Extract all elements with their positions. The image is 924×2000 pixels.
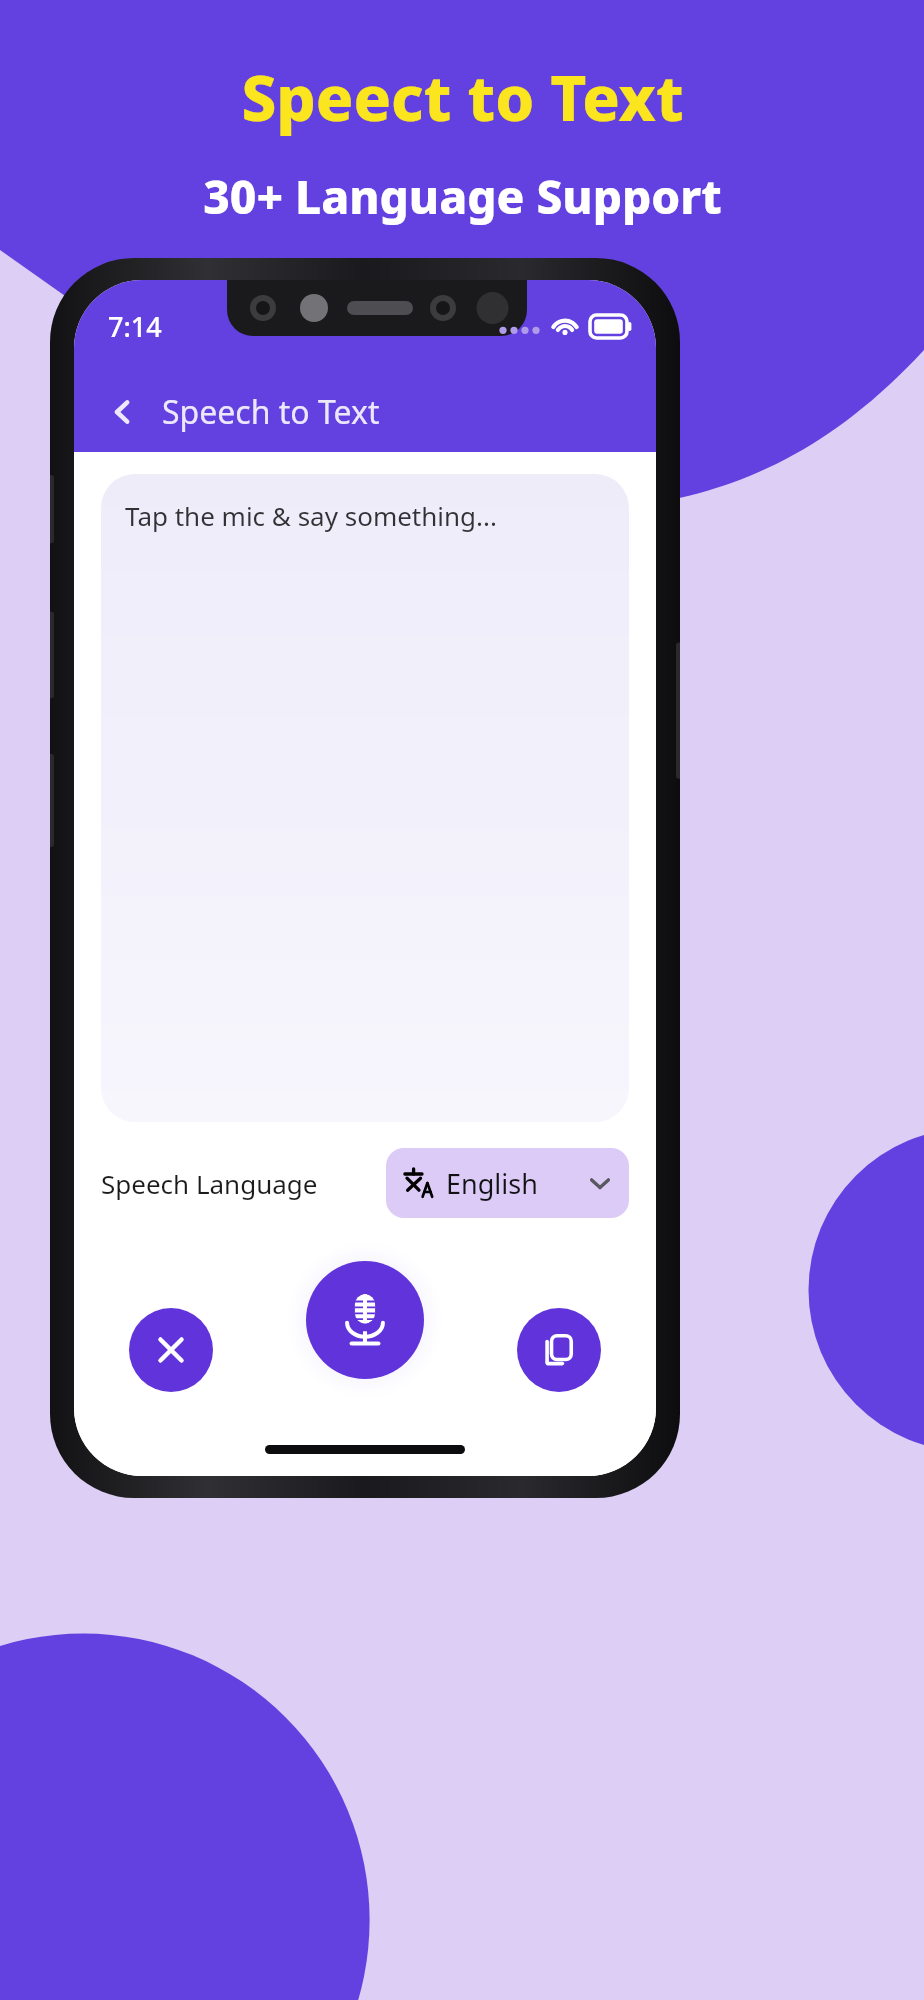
staticText: English — [446, 1165, 538, 1202]
button[interactable]: Copy — [517, 1308, 601, 1392]
button[interactable]: Clear — [129, 1308, 213, 1392]
button[interactable]: Tap the mic & say something... — [101, 474, 629, 1122]
button[interactable]: English — [386, 1148, 629, 1218]
button[interactable]: Start recording — [306, 1261, 424, 1379]
staticText: 7:14 — [108, 308, 162, 345]
staticText: 30+ Language Support — [203, 165, 722, 228]
staticText: Speech to Text — [162, 390, 380, 434]
staticText: Speech Language — [101, 1166, 318, 1201]
staticText: Tap the mic & say something... — [125, 498, 497, 533]
staticText: Speect to Text — [241, 55, 684, 139]
button[interactable]: Back — [98, 387, 148, 437]
